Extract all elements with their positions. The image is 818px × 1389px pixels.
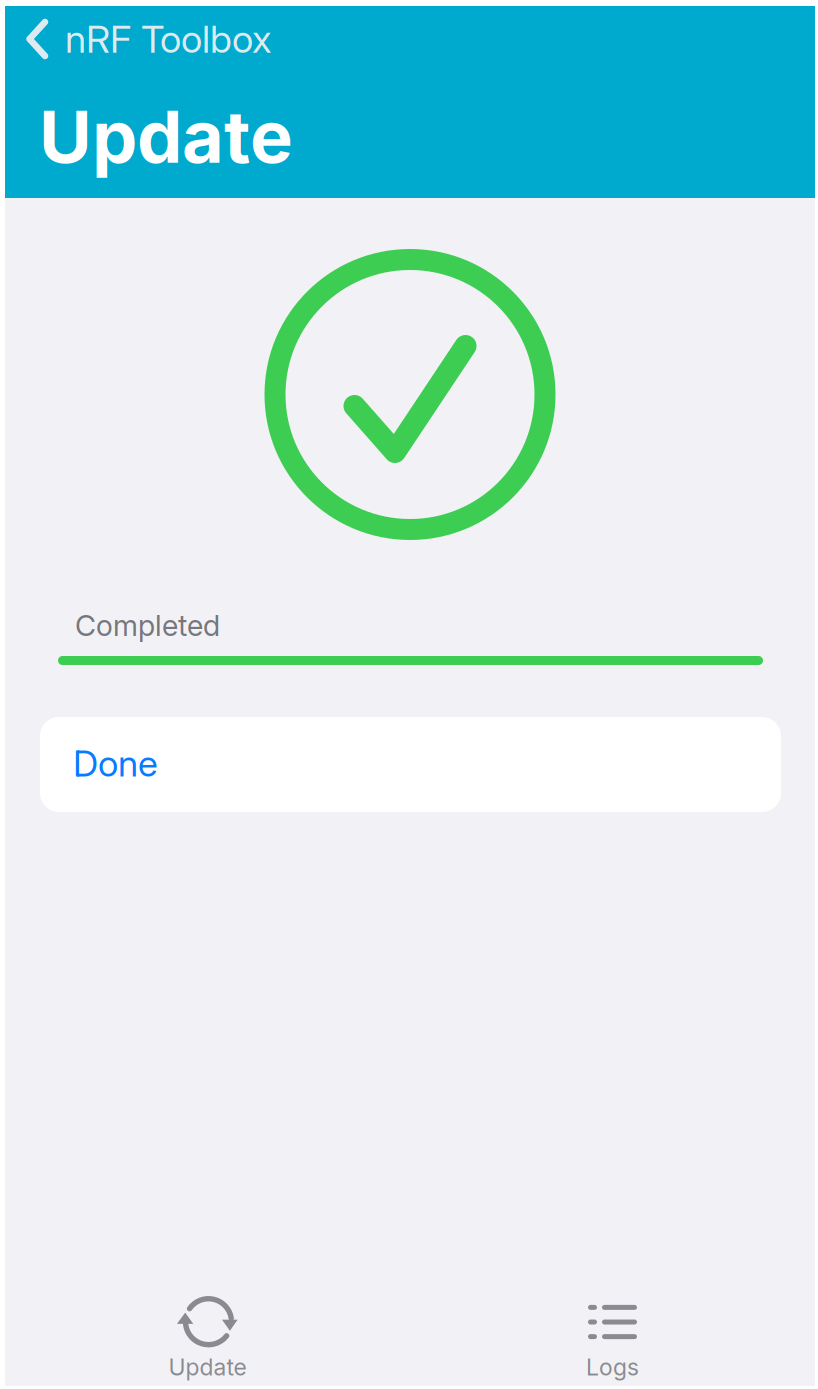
- button[interactable]: nRF Toolbox: [5, 12, 815, 66]
- staticText: Update: [39, 93, 293, 180]
- button[interactable]: Logs: [410, 1282, 815, 1386]
- staticText: Completed: [75, 608, 220, 643]
- staticText: nRF Toolbox: [65, 16, 272, 62]
- staticText: Done: [73, 742, 158, 785]
- button[interactable]: Done: [40, 717, 781, 812]
- button[interactable]: Update: [5, 1282, 410, 1386]
- staticText: Logs: [586, 1353, 639, 1381]
- staticText: Update: [168, 1353, 246, 1381]
